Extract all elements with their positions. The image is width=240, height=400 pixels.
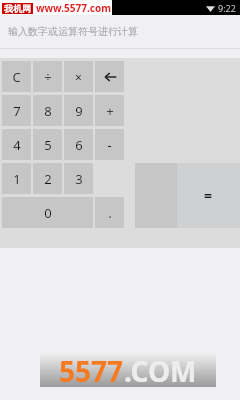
- staticText: 0: [44, 204, 52, 222]
- staticText: .: [108, 204, 112, 222]
- button[interactable]: 8: [33, 95, 62, 126]
- button[interactable]: 输入数字或运算符号进行计算: [0, 15, 240, 48]
- button[interactable]: +: [95, 95, 124, 126]
- staticText: 9:22: [218, 2, 236, 14]
- staticText: 4: [13, 136, 21, 154]
- button[interactable]: ÷: [33, 61, 62, 92]
- button[interactable]: .: [95, 197, 124, 228]
- staticText: 1: [13, 170, 21, 188]
- button[interactable]: 5: [33, 129, 62, 160]
- staticText: 6: [75, 136, 83, 154]
- staticText: 输入数字或运算符号进行计算: [8, 25, 138, 38]
- staticText: =: [204, 186, 213, 205]
- staticText: 7: [13, 102, 21, 120]
- button[interactable]: ×: [64, 61, 93, 92]
- staticText: 3: [75, 170, 83, 188]
- button[interactable]: C: [2, 61, 31, 92]
- staticText: www.5577.com: [36, 1, 111, 15]
- button[interactable]: 7: [2, 95, 31, 126]
- button[interactable]: 3: [64, 163, 93, 194]
- staticText: C: [12, 68, 21, 86]
- button[interactable]: 9: [64, 95, 93, 126]
- button[interactable]: 0: [2, 197, 93, 228]
- button[interactable]: Equals: [177, 163, 240, 228]
- staticText: +: [106, 102, 114, 120]
- button[interactable]: Backspace: [95, 61, 124, 92]
- staticText: 5577: [59, 352, 124, 387]
- staticText: -: [107, 136, 112, 154]
- button[interactable]: -: [95, 129, 124, 160]
- staticText: 8: [44, 102, 52, 120]
- button[interactable]: 6: [64, 129, 93, 160]
- staticText: ÷: [44, 68, 52, 86]
- button[interactable]: 1: [2, 163, 31, 194]
- staticText: 5: [44, 136, 52, 154]
- staticText: ×: [75, 69, 82, 85]
- staticText: .COM: [124, 352, 197, 387]
- button[interactable]: 2: [33, 163, 62, 194]
- staticText: 9: [75, 102, 83, 120]
- button[interactable]: 4: [2, 129, 31, 160]
- staticText: 我机网: [4, 3, 31, 14]
- staticText: 2: [44, 170, 52, 188]
